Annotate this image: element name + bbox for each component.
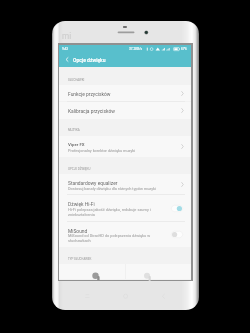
button[interactable]: MiSound [59,222,191,248]
staticText: Viper FX [68,142,85,147]
button[interactable]: Włącz MiSound [171,231,183,238]
button[interactable]: Funkcje przycisków [59,85,191,101]
staticText: TYP SŁUCHAWEK [68,257,92,260]
staticText: MiSound od DiracHD do polepszenia dźwięk… [68,233,153,243]
staticText: Profesjonalny korektor dźwięku muzyki [68,148,180,153]
button[interactable]: Standardowy equalizer [59,174,191,195]
button[interactable]: Viper FX [59,136,191,157]
staticText: Dźwięk Hi-Fi [68,201,95,207]
staticText: Standardowy equalizer [68,180,118,186]
staticText: OPCJE DŹWIĘKU [68,167,91,170]
staticText: Dostosuj kanały dźwięku dla różnych typó… [68,186,180,191]
staticText: 67% [181,47,187,51]
button[interactable]: Dźwięk Hi-Fi [59,195,191,222]
staticText: MUZYKA [68,128,80,131]
staticText: Hi-Fi polepsza jakość dźwięku, redukuje … [68,207,153,217]
staticText: SŁUCHAWKI [68,78,85,81]
button[interactable]: Wyłącz Dźwięk Hi-Fi [171,205,183,212]
staticText: Funkcje przycisków [68,91,111,97]
button[interactable]: Kalibracja przycisków [59,102,191,120]
button[interactable]: Wstecz [63,55,72,64]
staticText: mi [62,31,72,41]
staticText: Opcje dźwięku [73,57,106,63]
button[interactable]: Słuchawki nauszne [125,264,190,279]
staticText: MiSound [68,228,88,234]
staticText: Kalibracja przycisków [68,108,116,114]
staticText: 37.2KB/s [129,47,143,51]
button[interactable]: Słuchawki douszne [59,264,125,279]
staticText: 9:43 [62,47,69,51]
